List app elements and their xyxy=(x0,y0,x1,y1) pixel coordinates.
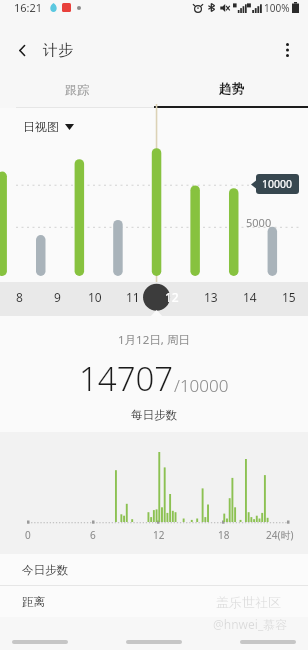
button[interactable]: 14 xyxy=(230,282,269,316)
staticText: 1月12日, 周日 xyxy=(118,332,190,348)
staticText: 5000 xyxy=(246,215,272,230)
button[interactable]: 跟踪 xyxy=(0,70,154,108)
staticText: 9 xyxy=(54,289,61,305)
staticText: 10000 xyxy=(262,177,293,191)
button[interactable]: More options xyxy=(271,34,303,66)
button[interactable]: 趋势 xyxy=(154,70,308,108)
button[interactable]: 距离 xyxy=(0,586,308,617)
staticText: 15 xyxy=(282,289,296,305)
staticText: 日视图 xyxy=(23,119,59,134)
staticText: 6 xyxy=(90,528,96,542)
button[interactable]: 11 xyxy=(114,282,152,316)
staticText: 盖乐世社区 xyxy=(216,594,281,610)
staticText: 0 xyxy=(25,528,31,542)
staticText: 计步 xyxy=(43,41,73,60)
staticText: 趋势 xyxy=(219,81,244,97)
button[interactable]: 12 xyxy=(152,282,191,316)
button[interactable]: 今日步数 xyxy=(0,554,308,585)
staticText: 8 xyxy=(16,289,23,305)
staticText: 今日步数 xyxy=(22,563,68,577)
button[interactable]: 13 xyxy=(191,282,230,316)
staticText: 16:21 xyxy=(14,0,43,15)
staticText: 11 xyxy=(126,289,140,305)
staticText: 10 xyxy=(88,289,102,305)
staticText: 距离 xyxy=(22,595,45,609)
staticText: 每日步数 xyxy=(131,408,177,422)
button[interactable]: Navigation xyxy=(12,640,68,644)
button[interactable]: 15 xyxy=(269,282,308,316)
staticText: /10000 xyxy=(174,374,229,397)
button[interactable]: Navigation xyxy=(126,640,182,644)
staticText: 100% xyxy=(264,1,290,15)
staticText: 12 xyxy=(165,289,179,305)
button[interactable]: Navigation xyxy=(240,640,296,644)
staticText: 14707 xyxy=(79,356,174,401)
staticText: 12 xyxy=(153,528,165,542)
staticText: 24(时) xyxy=(266,528,294,542)
staticText: 14 xyxy=(243,289,257,305)
button[interactable]: 8 xyxy=(0,282,38,316)
button[interactable]: 10 xyxy=(76,282,114,316)
button[interactable]: Back xyxy=(6,34,38,66)
staticText: 13 xyxy=(204,289,218,305)
button[interactable]: 9 xyxy=(38,282,76,316)
staticText: 18 xyxy=(218,528,230,542)
staticText: 跟踪 xyxy=(65,82,89,97)
button[interactable]: 日视图 xyxy=(20,114,77,139)
staticText: @hnwei_慕容 xyxy=(213,616,288,632)
